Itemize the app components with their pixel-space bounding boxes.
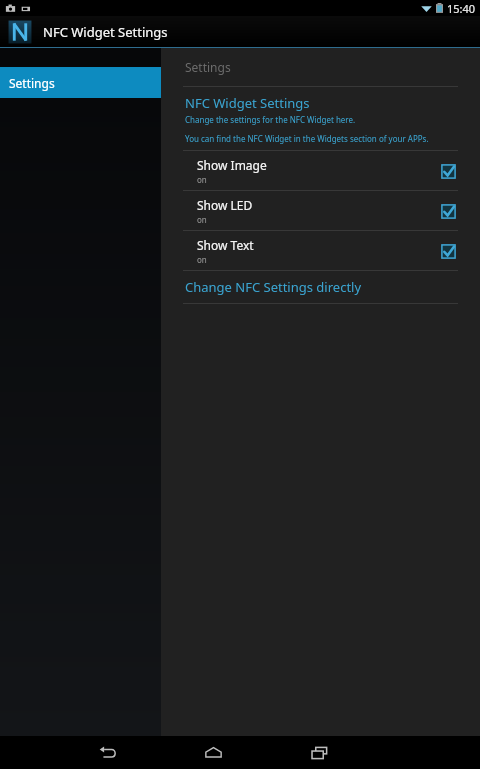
staticText: You can find the NFC Widget in the Widge…: [185, 133, 429, 144]
button[interactable]: Show LED: [161, 191, 480, 230]
staticText: on: [197, 254, 207, 265]
staticText: Change the settings for the NFC Widget h…: [185, 114, 356, 125]
staticText: Show Text: [197, 237, 254, 253]
staticText: on: [197, 174, 207, 185]
button[interactable]: Change NFC Settings directly: [161, 271, 480, 303]
staticText: NFC Widget Settings: [185, 94, 310, 112]
button[interactable]: Settings: [0, 67, 161, 98]
staticText: on: [197, 214, 207, 225]
staticText: Show LED: [197, 197, 253, 213]
staticText: Show Image: [197, 157, 267, 173]
staticText: Change NFC Settings directly: [185, 278, 362, 296]
button[interactable]: Show Image: [161, 151, 480, 190]
staticText: Settings: [9, 75, 55, 91]
button[interactable]: Home: [191, 736, 235, 769]
button[interactable]: Recent apps: [297, 736, 341, 769]
button[interactable]: Show Text: [161, 231, 480, 270]
staticText: 15:40: [447, 1, 476, 16]
button[interactable]: NFC Widget Settings: [161, 87, 480, 150]
button[interactable]: Toggle, checked: [438, 201, 458, 221]
button[interactable]: Toggle, checked: [438, 161, 458, 181]
staticText: Settings: [185, 59, 231, 75]
button[interactable]: Toggle, checked: [438, 241, 458, 261]
button[interactable]: Back: [85, 736, 129, 769]
staticText: NFC Widget Settings: [43, 23, 168, 41]
